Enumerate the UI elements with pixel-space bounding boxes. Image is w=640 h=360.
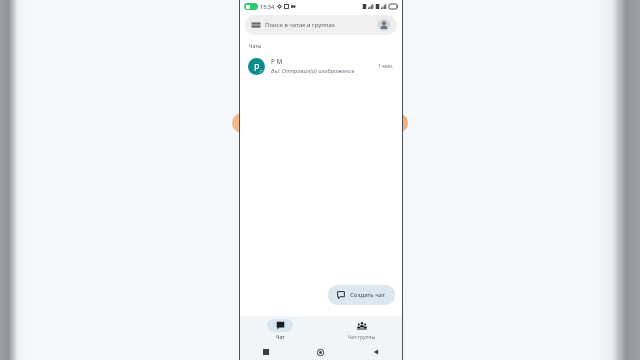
staticText: Поиск в чатах и группах <box>265 21 374 29</box>
button[interactable]: P <box>239 53 403 79</box>
button[interactable]: Создать чат <box>328 285 395 305</box>
other: Menu <box>252 21 260 29</box>
staticText: 15:34 <box>260 3 275 10</box>
button[interactable]: Recent apps <box>239 344 293 360</box>
staticText: P <box>254 61 260 73</box>
button[interactable]: Back <box>348 344 403 360</box>
staticText: Создать чат <box>350 291 386 299</box>
staticText: Чаты <box>249 43 262 50</box>
staticText: Чат <box>276 334 285 341</box>
staticText: Вы: Отправил(а) изображение <box>271 67 355 75</box>
button[interactable]: Чат-группы <box>321 316 403 344</box>
button[interactable]: Menu <box>245 15 397 35</box>
staticText: 1 мин. <box>378 63 394 70</box>
staticText: P M <box>271 57 283 66</box>
staticText: Чат-группы <box>348 334 376 341</box>
button[interactable]: Profile <box>378 19 390 31</box>
button[interactable]: Чат <box>239 316 321 344</box>
button[interactable]: Home <box>293 344 348 360</box>
